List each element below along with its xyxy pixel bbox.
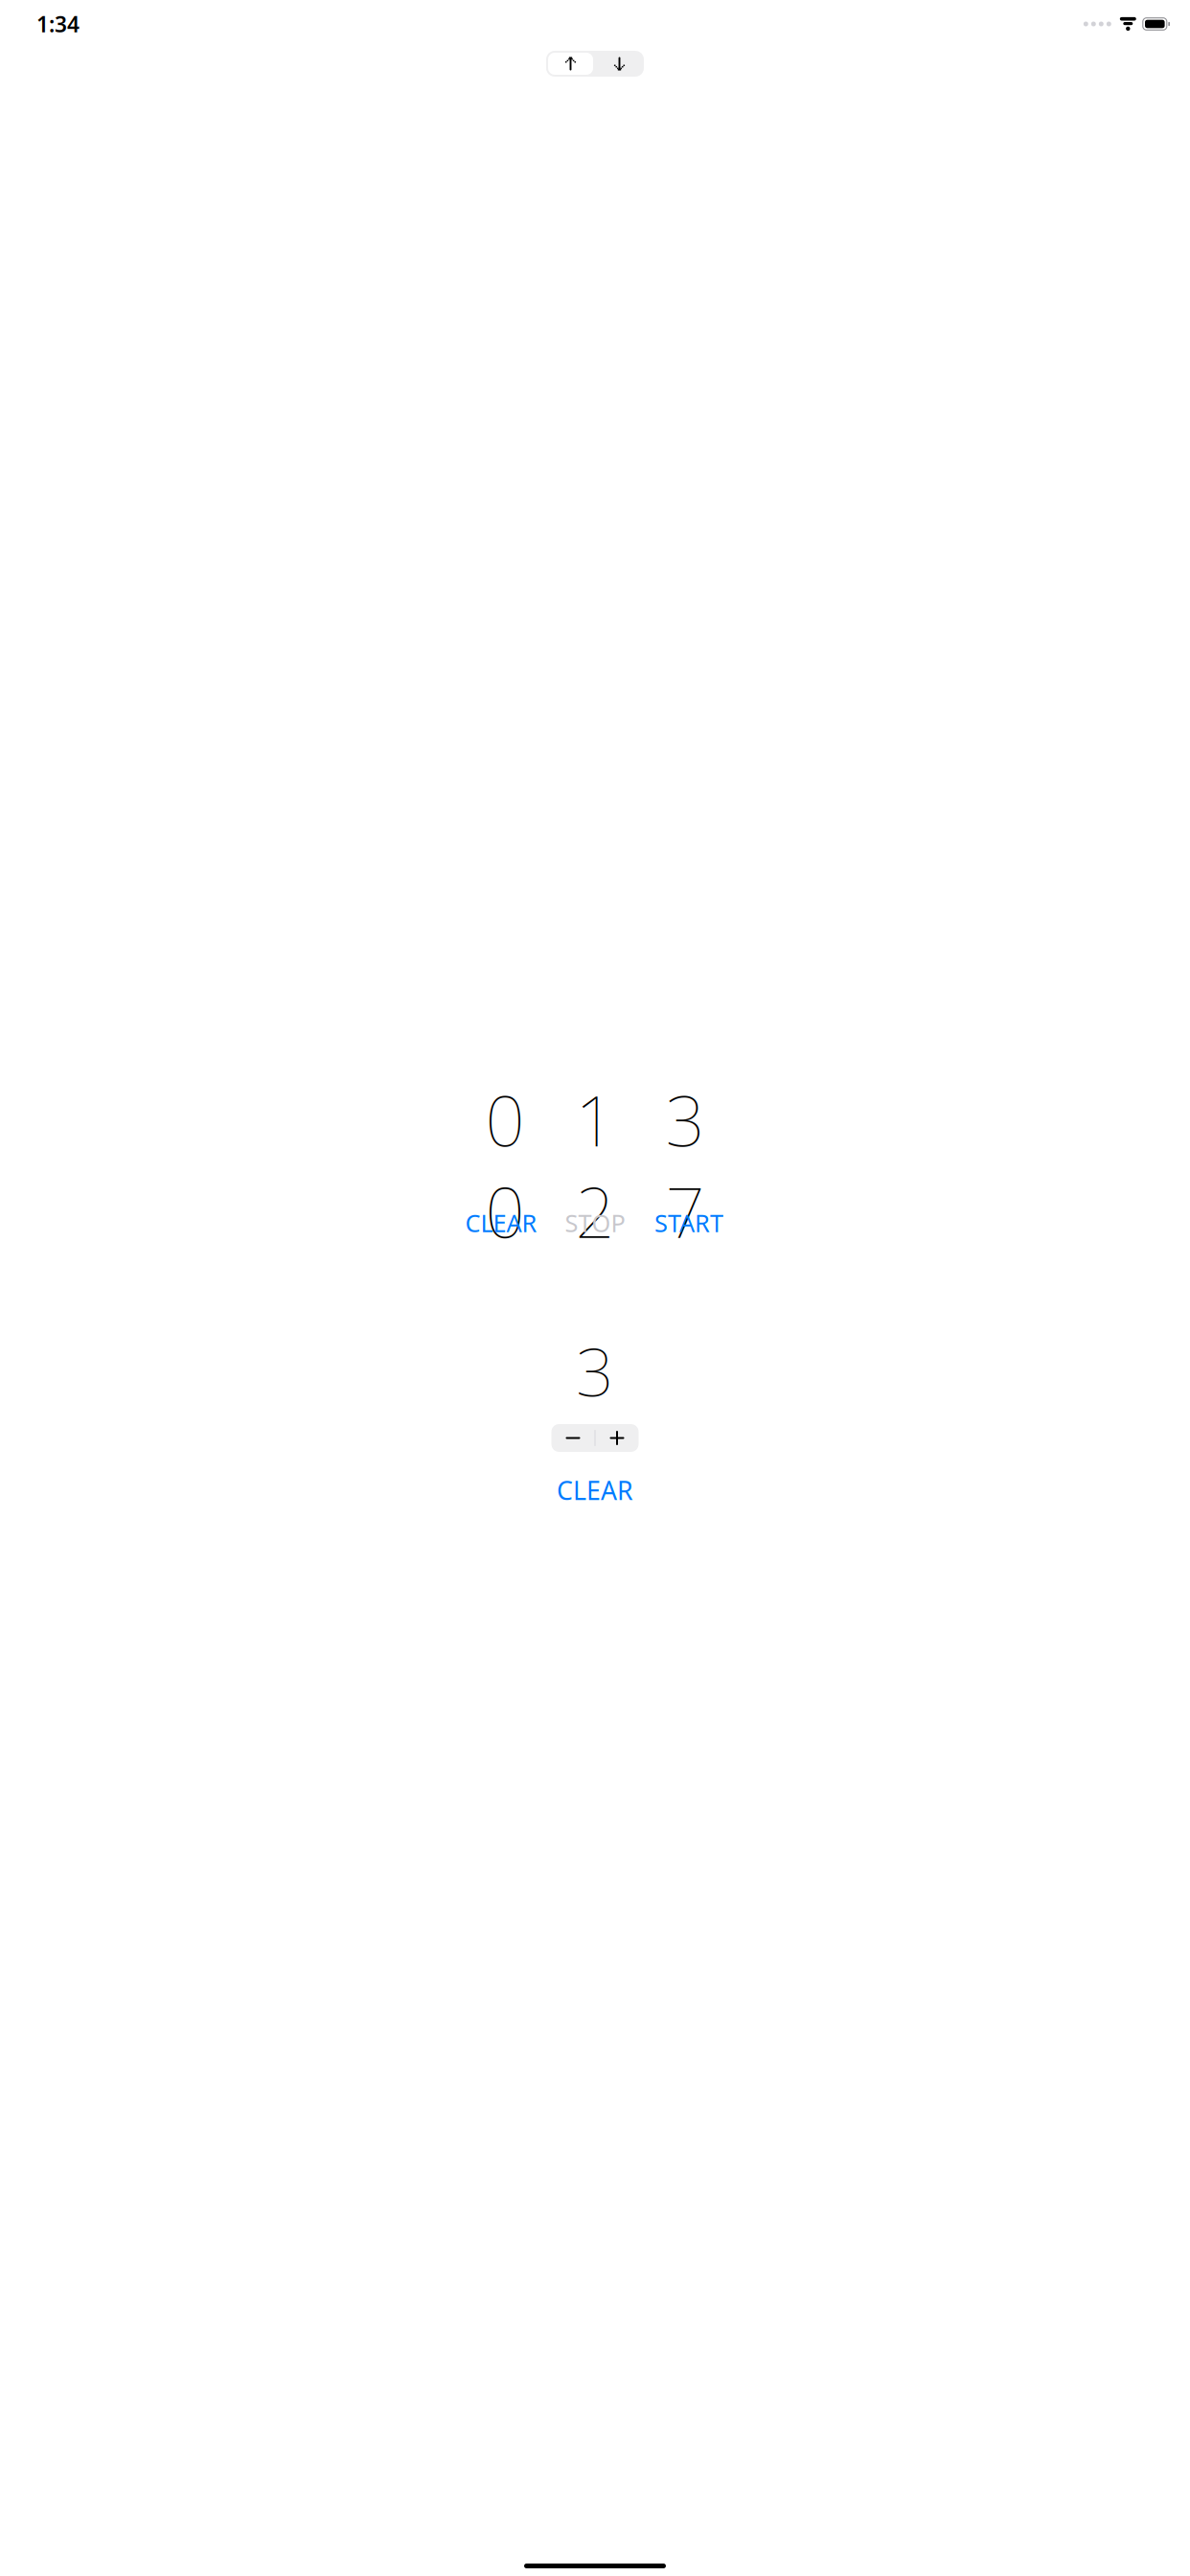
button[interactable]: CLEAR xyxy=(514,1473,676,1507)
button[interactable]: START xyxy=(642,1206,736,1240)
staticText: 37 xyxy=(665,1074,705,1257)
staticText: STOP xyxy=(565,1207,625,1239)
staticText: CLEAR xyxy=(557,1473,633,1507)
button[interactable]: STOP xyxy=(548,1206,642,1240)
staticText: 00 xyxy=(485,1074,525,1257)
button[interactable]: Count up xyxy=(546,51,595,77)
button[interactable]: Increase xyxy=(595,1424,639,1452)
button[interactable]: Decrease xyxy=(551,1424,595,1452)
button[interactable]: CLEAR xyxy=(454,1206,548,1240)
staticText: 12 xyxy=(575,1074,615,1257)
staticText: CLEAR xyxy=(465,1207,537,1239)
button[interactable]: Count down xyxy=(595,51,644,77)
staticText: 3 xyxy=(576,1326,614,1415)
staticText: 1:34 xyxy=(36,9,80,38)
staticText: START xyxy=(654,1207,723,1239)
